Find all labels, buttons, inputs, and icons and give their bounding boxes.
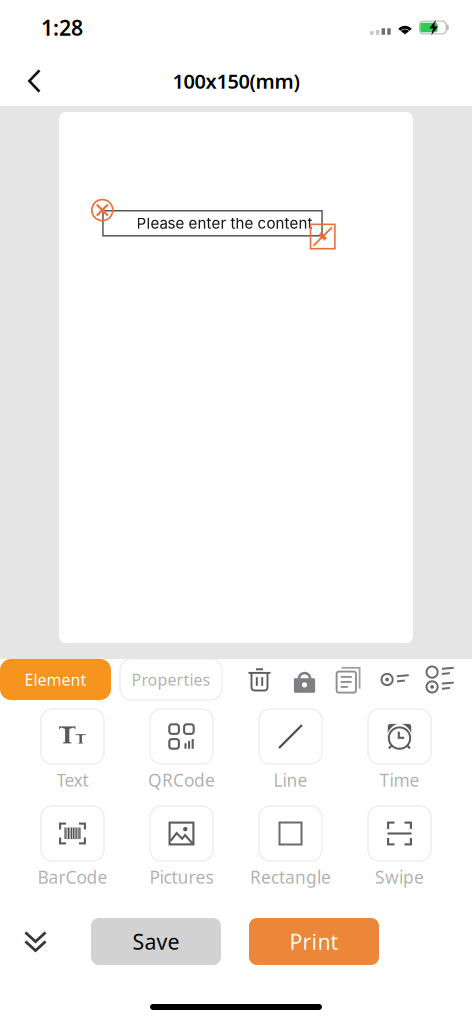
staticText: Properties <box>131 669 210 690</box>
button[interactable]: Text <box>18 709 127 806</box>
staticText: Rectangle <box>250 865 331 888</box>
staticText: 100x150(mm) <box>172 68 299 94</box>
staticText: Please enter the content <box>136 214 312 232</box>
button[interactable]: Rectangle <box>236 806 345 903</box>
staticText: 1:28 <box>41 13 83 42</box>
button[interactable]: BarCode <box>18 806 127 903</box>
button[interactable]: Collapse panel <box>11 918 60 965</box>
staticText: Save <box>132 927 179 956</box>
button[interactable]: Properties <box>120 659 222 700</box>
staticText: Line <box>273 768 307 791</box>
button[interactable]: QRCode <box>127 709 236 806</box>
staticText: Pictures <box>149 865 213 888</box>
staticText: BarCode <box>37 865 107 888</box>
button[interactable]: Duplicate <box>329 659 370 700</box>
staticText: Print <box>289 927 338 956</box>
button[interactable]: Delete <box>239 659 280 700</box>
staticText: QRCode <box>148 768 215 791</box>
button[interactable]: Line <box>236 709 345 806</box>
button[interactable]: Arrange <box>419 659 460 700</box>
button[interactable]: Print <box>249 918 379 965</box>
button[interactable]: Lock <box>284 659 325 700</box>
button[interactable]: Time <box>345 709 454 806</box>
staticText: Time <box>379 768 419 791</box>
button[interactable]: Element <box>0 659 111 700</box>
button[interactable]: Swipe <box>345 806 454 903</box>
button[interactable]: Pictures <box>127 806 236 903</box>
staticText: Swipe <box>375 865 424 888</box>
staticText: Element <box>24 669 86 690</box>
staticText: Text <box>56 768 88 791</box>
button[interactable]: Back <box>11 56 58 106</box>
button[interactable]: Save <box>91 918 221 965</box>
button[interactable]: Align <box>374 659 415 700</box>
